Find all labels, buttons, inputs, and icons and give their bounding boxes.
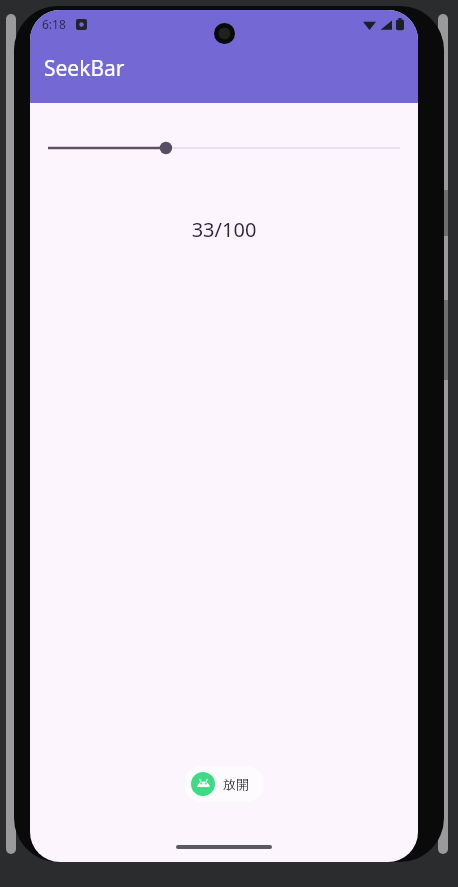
button[interactable]: Android [184, 766, 264, 802]
staticText: 放開 [223, 776, 249, 792]
other: Android [191, 772, 215, 796]
staticText: SeekBar [44, 54, 125, 83]
staticText: 33/100 [30, 216, 418, 243]
staticText: 6:18 [42, 16, 66, 32]
button[interactable] [30, 136, 418, 160]
